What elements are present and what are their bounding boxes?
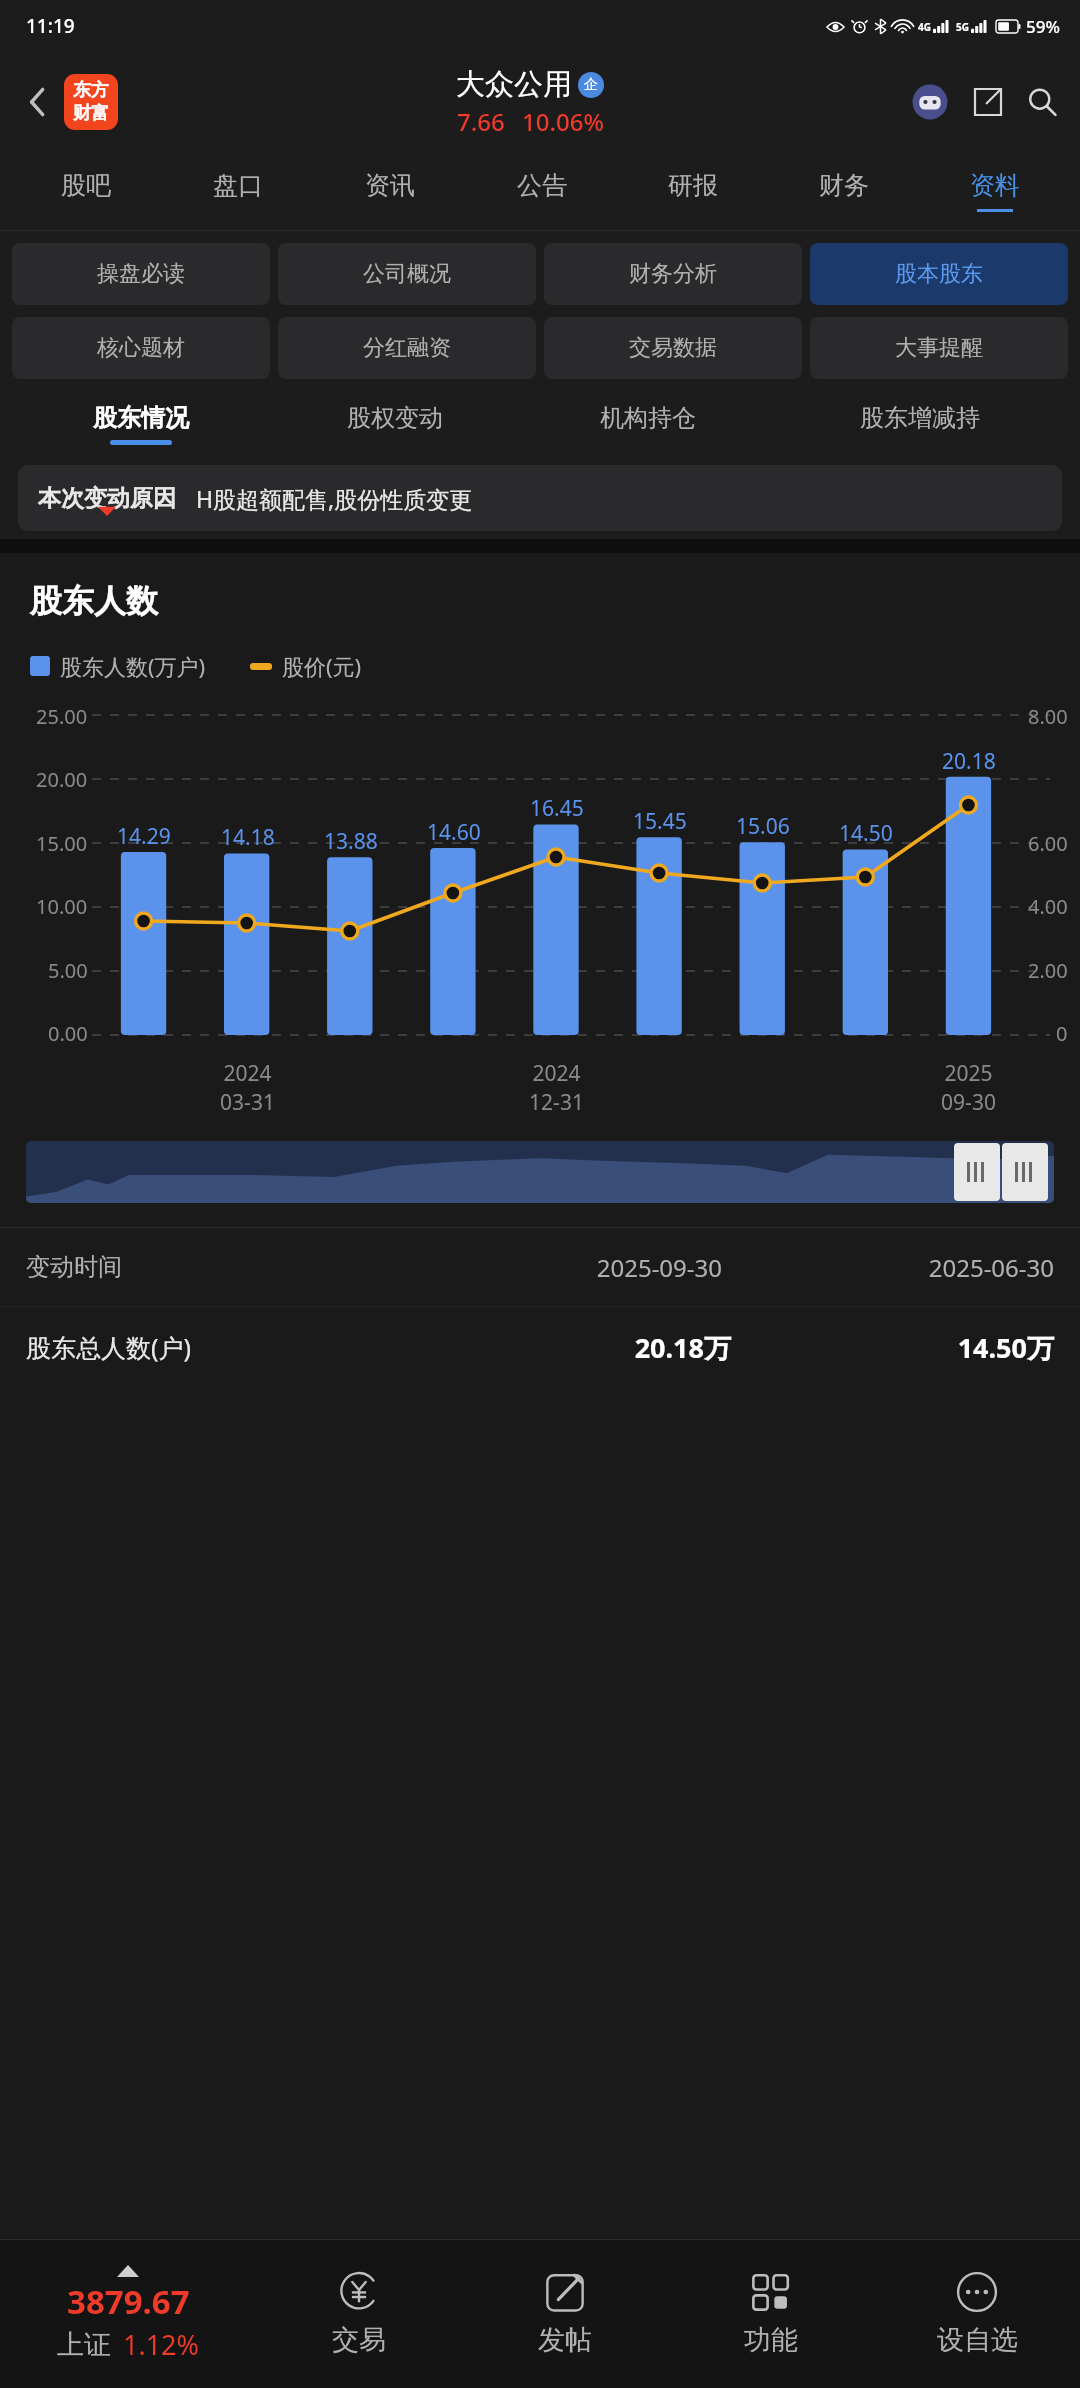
staticText: 东方: [73, 79, 109, 102]
staticText: 25.00: [36, 703, 88, 730]
button[interactable]: 3879.67: [0, 2240, 256, 2388]
staticText: 股本股东: [895, 260, 983, 288]
staticText: 11:19: [26, 13, 75, 39]
staticText: 2024 12-31: [529, 1059, 584, 1117]
button[interactable]: 操盘必读: [12, 243, 270, 305]
button[interactable]: 股东情况: [14, 391, 268, 457]
staticText: 公告: [517, 170, 567, 201]
staticText: 公司概况: [363, 260, 451, 288]
button[interactable]: 东方财富: [64, 74, 118, 130]
button[interactable]: 股本股东: [810, 243, 1068, 305]
staticText: 0.00: [48, 1020, 88, 1047]
staticText: 2025 09-30: [941, 1059, 996, 1117]
button[interactable]: 设自选: [874, 2240, 1080, 2388]
staticText: 交易: [332, 2323, 386, 2357]
staticText: 16.45: [530, 794, 584, 823]
staticText: 5.00: [48, 957, 88, 984]
staticText: 3879.67: [67, 2279, 190, 2324]
staticText: 本次变动原因: [38, 484, 176, 513]
staticText: 15.45: [633, 807, 687, 836]
staticText: 股吧: [61, 170, 111, 201]
button[interactable]: 研报: [617, 152, 768, 230]
staticText: 财务分析: [629, 260, 717, 288]
staticText: 交易数据: [629, 334, 717, 362]
staticText: 盘口: [213, 170, 263, 201]
staticText: 59%: [1026, 15, 1060, 38]
button[interactable]: 交易: [256, 2240, 462, 2388]
staticText: 资讯: [365, 170, 415, 201]
button[interactable]: 财务: [768, 152, 919, 230]
button[interactable]: 资料: [919, 152, 1070, 230]
button[interactable]: 大事提醒: [810, 317, 1068, 379]
staticText: 发帖: [538, 2323, 592, 2357]
button[interactable]: 资讯: [314, 152, 466, 230]
staticText: 0: [1056, 1020, 1068, 1047]
staticText: 8.00: [1028, 703, 1068, 730]
button[interactable]: 股东增减持: [774, 391, 1066, 457]
staticText: 5G: [956, 20, 969, 34]
staticText: 14.50万: [747, 1329, 1054, 1366]
staticText: 股东增减持: [860, 403, 980, 433]
staticText: 大众公用: [456, 66, 572, 103]
button[interactable]: AI助手: [906, 78, 954, 126]
staticText: 功能: [744, 2323, 798, 2357]
staticText: 资料: [970, 170, 1020, 201]
staticText: 股权变动: [347, 403, 443, 433]
staticText: 大事提醒: [895, 334, 983, 362]
staticText: 15.00: [36, 830, 88, 857]
staticText: 10.06%: [522, 105, 604, 138]
staticText: 14.50: [839, 819, 893, 848]
staticText: 上证: [57, 2328, 111, 2362]
staticText: 核心题材: [97, 334, 185, 362]
button[interactable]: 发帖: [462, 2240, 668, 2388]
staticText: 1.12%: [123, 2326, 200, 2363]
staticText: 股东人数(万户): [60, 651, 206, 681]
staticText: 研报: [668, 170, 718, 201]
staticText: 6.00: [1028, 830, 1068, 857]
staticText: 设自选: [937, 2323, 1018, 2357]
staticText: 14.60: [427, 818, 481, 847]
button[interactable]: 交易数据: [544, 317, 802, 379]
button[interactable]: 股权变动: [268, 391, 521, 457]
button[interactable]: 财务分析: [544, 243, 802, 305]
staticText: 14.18: [221, 823, 275, 852]
button[interactable]: 股吧: [10, 152, 162, 230]
button[interactable]: 分红融资: [278, 317, 536, 379]
staticText: 2025-06-30: [738, 1251, 1054, 1284]
staticText: 股东情况: [93, 403, 189, 433]
staticText: 4.00: [1028, 893, 1068, 920]
staticText: 财富: [73, 102, 109, 125]
button[interactable]: 机构持仓: [521, 391, 774, 457]
staticText: 股东人数: [30, 581, 158, 621]
button[interactable]: 核心题材: [12, 317, 270, 379]
staticText: 7.66: [457, 105, 505, 138]
staticText: 10.00: [36, 893, 88, 920]
staticText: 20.18: [942, 747, 996, 776]
staticText: H股超额配售,股份性质变更: [196, 483, 473, 514]
staticText: 企: [584, 76, 598, 94]
button[interactable]: 公告: [466, 152, 617, 230]
button[interactable]: Search: [1018, 78, 1066, 126]
staticText: 2025-09-30: [406, 1251, 722, 1284]
button[interactable]: 盘口: [162, 152, 314, 230]
button[interactable]: Share: [964, 78, 1012, 126]
staticText: 股东总人数(户): [26, 1330, 424, 1364]
staticText: 20.00: [36, 766, 88, 793]
staticText: 15.06: [736, 812, 790, 841]
staticText: 4G: [918, 20, 931, 34]
button[interactable]: Back: [14, 79, 60, 125]
staticText: 2024 03-31: [220, 1059, 275, 1117]
staticText: 操盘必读: [97, 260, 185, 288]
staticText: 2.00: [1028, 957, 1068, 984]
button[interactable]: 时间范围: [26, 1141, 1054, 1203]
staticText: 财务: [819, 170, 869, 201]
staticText: 20.18万: [424, 1329, 731, 1366]
button[interactable]: 本次变动原因: [18, 465, 1062, 531]
staticText: 机构持仓: [600, 403, 696, 433]
staticText: 股价(元): [282, 651, 362, 681]
button[interactable]: 功能: [668, 2240, 874, 2388]
staticText: 变动时间: [26, 1252, 406, 1282]
button[interactable]: 公司概况: [278, 243, 536, 305]
staticText: 13.88: [324, 827, 378, 856]
staticText: 14.29: [117, 822, 171, 851]
